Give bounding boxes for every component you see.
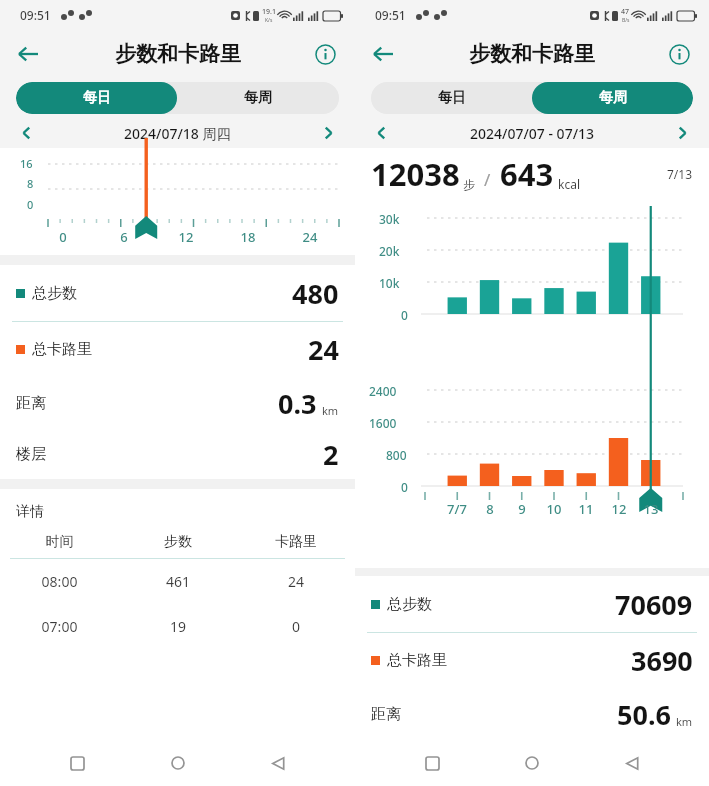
button[interactable]: Home [159,744,197,782]
staticText: 总卡路里 [387,651,447,670]
staticText: 距离 [16,394,46,413]
staticText: km [676,714,693,729]
staticText: 800 [386,447,407,463]
staticText: 10k [379,275,400,291]
staticText: 0 [401,479,408,495]
button[interactable]: 距离 [371,688,693,740]
button[interactable]: 总卡路里 [371,633,693,688]
button[interactable]: Next period [667,118,697,148]
button[interactable]: Back [259,744,297,782]
staticText: 24 [308,331,339,368]
staticText: 步数和卡路里 [469,41,595,67]
button[interactable]: 每周 [532,82,693,114]
staticText: 9 [506,500,538,518]
staticText: 7/7 [441,500,473,518]
button[interactable]: Next period [313,118,343,148]
button[interactable]: 总卡路里 [16,322,339,377]
staticText: 0 [27,197,34,212]
staticText: 0 [401,307,408,323]
staticText: 步数和卡路里 [115,41,241,67]
staticText: 2400 [369,383,397,399]
staticText: 16 [20,156,33,171]
button[interactable]: Back [613,744,651,782]
button[interactable]: Back [363,34,403,74]
staticText: / [484,168,491,191]
staticText: 时间 [0,533,119,551]
button[interactable]: 每日 [16,82,177,114]
staticText: 19 [119,617,237,636]
button[interactable]: Info [661,36,697,72]
button[interactable]: 每周 [177,82,339,114]
staticText: 70609 [615,586,693,623]
staticText: 47 [621,7,630,17]
staticText: 0 [237,617,355,636]
staticText: 24 [296,228,324,246]
staticText: 楼层 [16,445,46,464]
button[interactable]: Home [513,744,551,782]
staticText: 6 [110,228,138,246]
staticText: kcal [558,176,580,192]
staticText: 19.1 [262,7,276,17]
staticText: 461 [119,572,237,591]
staticText: 总步数 [387,595,432,614]
staticText: 11 [570,500,602,518]
staticText: 480 [292,275,339,312]
staticText: 3690 [631,642,693,679]
button[interactable]: 总步数 [371,576,693,632]
button[interactable]: Recent apps [58,744,96,782]
staticText: 07:00 [0,617,119,636]
staticText: 10 [538,500,570,518]
staticText: 643 [500,153,554,195]
staticText: 2024/07/07 - 07/13 [470,124,595,143]
staticText: 距离 [371,705,401,724]
button[interactable]: 楼层 [16,429,339,479]
staticText: 0 [49,228,77,246]
staticText: 每日 [438,89,466,107]
staticText: 8 [27,176,34,191]
staticText: 每周 [599,89,627,107]
staticText: 24 [237,572,355,591]
staticText: km [322,403,339,418]
staticText: 0.3 [278,385,317,422]
button[interactable]: 07:00 [0,604,355,649]
staticText: 18 [234,228,262,246]
staticText: 每周 [244,89,272,107]
staticText: 08:00 [0,572,119,591]
staticText: 30k [379,211,400,227]
staticText: 详情 [16,503,44,521]
button[interactable]: 总步数 [16,265,339,321]
staticText: 总步数 [32,284,77,303]
staticText: 12 [172,228,200,246]
staticText: 7/13 [667,166,693,182]
staticText: 09:51 [20,7,51,23]
button[interactable]: Previous period [367,118,397,148]
button[interactable]: Previous period [12,118,42,148]
staticText: 卡路里 [237,533,355,551]
staticText: 13 [635,500,667,518]
staticText: 12 [603,500,635,518]
button[interactable]: 每日 [371,82,532,114]
staticText: 总卡路里 [32,340,92,359]
button[interactable]: 距离 [16,377,339,429]
button[interactable]: Back [8,34,48,74]
staticText: 1600 [369,415,397,431]
staticText: 步 [463,177,475,192]
staticText: 20k [379,243,400,259]
button[interactable]: Recent apps [413,744,451,782]
staticText: 2024/07/18 周四 [124,124,231,143]
button[interactable]: Info [307,36,343,72]
staticText: 09:51 [375,7,406,23]
button[interactable]: 08:00 [0,559,355,604]
staticText: 12038 [371,153,460,195]
staticText: 每日 [83,89,111,107]
staticText: 步数 [119,533,237,551]
staticText: 8 [474,500,506,518]
staticText: B/s [622,17,630,24]
staticText: K/s [265,17,273,24]
staticText: 50.6 [617,696,671,733]
staticText: 2 [323,436,339,473]
